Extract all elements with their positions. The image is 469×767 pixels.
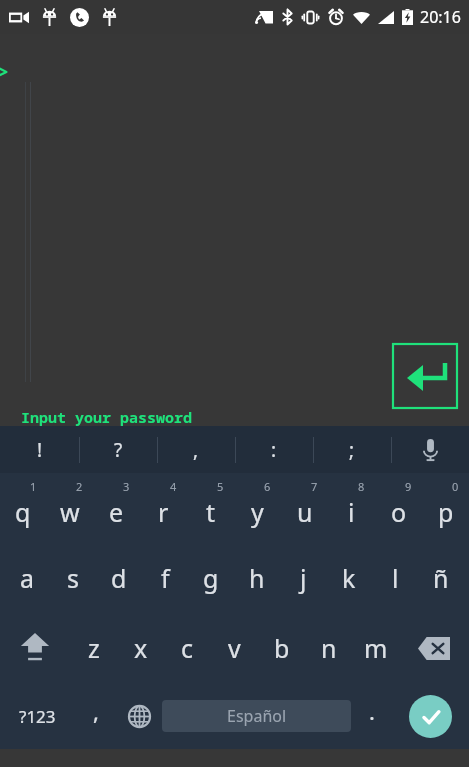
- staticText: q: [15, 495, 31, 529]
- button[interactable]: d: [96, 543, 142, 613]
- staticText: i: [348, 495, 355, 529]
- staticText: s: [67, 561, 79, 595]
- button[interactable]: Done: [409, 695, 452, 738]
- staticText: l: [392, 561, 399, 595]
- staticText: t: [206, 495, 216, 529]
- staticText: n: [321, 631, 337, 665]
- button[interactable]: c: [164, 613, 211, 683]
- button[interactable]: ñ: [418, 543, 464, 613]
- button[interactable]: a: [5, 543, 50, 613]
- staticText: .: [369, 696, 375, 726]
- staticText: r: [158, 495, 169, 529]
- staticText: 5: [217, 479, 224, 494]
- button[interactable]: m: [352, 613, 399, 683]
- button[interactable]: ?: [79, 426, 157, 473]
- button[interactable]: h: [234, 543, 280, 613]
- staticText: 20:16: [420, 6, 461, 28]
- staticText: ?: [114, 437, 123, 463]
- staticText: >: [0, 58, 9, 85]
- staticText: ;: [349, 437, 355, 463]
- staticText: ?123: [19, 705, 56, 728]
- staticText: k: [342, 561, 356, 595]
- staticText: x: [134, 631, 148, 665]
- button[interactable]: ,: [157, 426, 235, 473]
- button[interactable]: g: [188, 543, 234, 613]
- button[interactable]: Español: [162, 700, 351, 732]
- button[interactable]: :: [235, 426, 313, 473]
- button[interactable]: .: [351, 683, 392, 749]
- button[interactable]: n: [305, 613, 352, 683]
- staticText: u: [297, 495, 313, 529]
- button[interactable]: ?123: [0, 683, 75, 749]
- staticText: 4: [170, 479, 177, 494]
- button[interactable]: f: [142, 543, 188, 613]
- staticText: 7: [311, 479, 318, 494]
- staticText: 0: [452, 479, 459, 494]
- staticText: m: [364, 631, 388, 665]
- button[interactable]: 4: [140, 473, 187, 543]
- button[interactable]: l: [372, 543, 418, 613]
- button[interactable]: j: [280, 543, 326, 613]
- staticText: z: [88, 631, 100, 665]
- button[interactable]: Change language: [116, 683, 162, 749]
- button[interactable]: 5: [187, 473, 234, 543]
- staticText: ñ: [433, 561, 449, 595]
- staticText: d: [111, 561, 127, 595]
- button[interactable]: z: [70, 613, 117, 683]
- button[interactable]: Shift: [0, 613, 70, 683]
- button[interactable]: v: [211, 613, 258, 683]
- staticText: 3: [123, 479, 130, 494]
- staticText: g: [203, 561, 219, 595]
- button[interactable]: 3: [93, 473, 140, 543]
- staticText: 1: [30, 479, 37, 494]
- staticText: :: [271, 437, 277, 463]
- button[interactable]: !: [0, 426, 79, 473]
- staticText: Español: [227, 705, 287, 727]
- staticText: b: [274, 631, 290, 665]
- button[interactable]: 0: [422, 473, 469, 543]
- staticText: o: [391, 495, 407, 529]
- button[interactable]: 6: [234, 473, 281, 543]
- button[interactable]: s: [50, 543, 96, 613]
- staticText: p: [438, 495, 454, 529]
- button[interactable]: ;: [313, 426, 391, 473]
- button[interactable]: x: [117, 613, 164, 683]
- staticText: w: [60, 495, 80, 529]
- button[interactable]: Backspace: [399, 613, 469, 683]
- button[interactable]: 1: [0, 473, 46, 543]
- staticText: e: [109, 495, 124, 529]
- button[interactable]: 7: [281, 473, 328, 543]
- staticText: 8: [358, 479, 365, 494]
- staticText: 9: [405, 479, 412, 494]
- button[interactable]: ,: [75, 683, 116, 749]
- staticText: 6: [264, 479, 271, 494]
- button[interactable]: Voice input: [391, 426, 469, 473]
- staticText: 2: [76, 479, 83, 494]
- staticText: h: [249, 561, 265, 595]
- staticText: ,: [193, 437, 199, 463]
- staticText: v: [228, 631, 241, 665]
- staticText: f: [161, 561, 170, 595]
- staticText: !: [37, 437, 43, 463]
- staticText: c: [181, 631, 194, 665]
- button[interactable]: k: [326, 543, 372, 613]
- button[interactable]: b: [258, 613, 305, 683]
- staticText: y: [251, 495, 264, 529]
- staticText: ,: [93, 696, 99, 726]
- button[interactable]: 9: [375, 473, 422, 543]
- staticText: Input your password: [21, 407, 193, 427]
- button[interactable]: Enter: [393, 344, 457, 408]
- staticText: j: [300, 561, 307, 595]
- button[interactable]: 2: [46, 473, 93, 543]
- staticText: a: [20, 561, 35, 595]
- button[interactable]: 8: [328, 473, 375, 543]
